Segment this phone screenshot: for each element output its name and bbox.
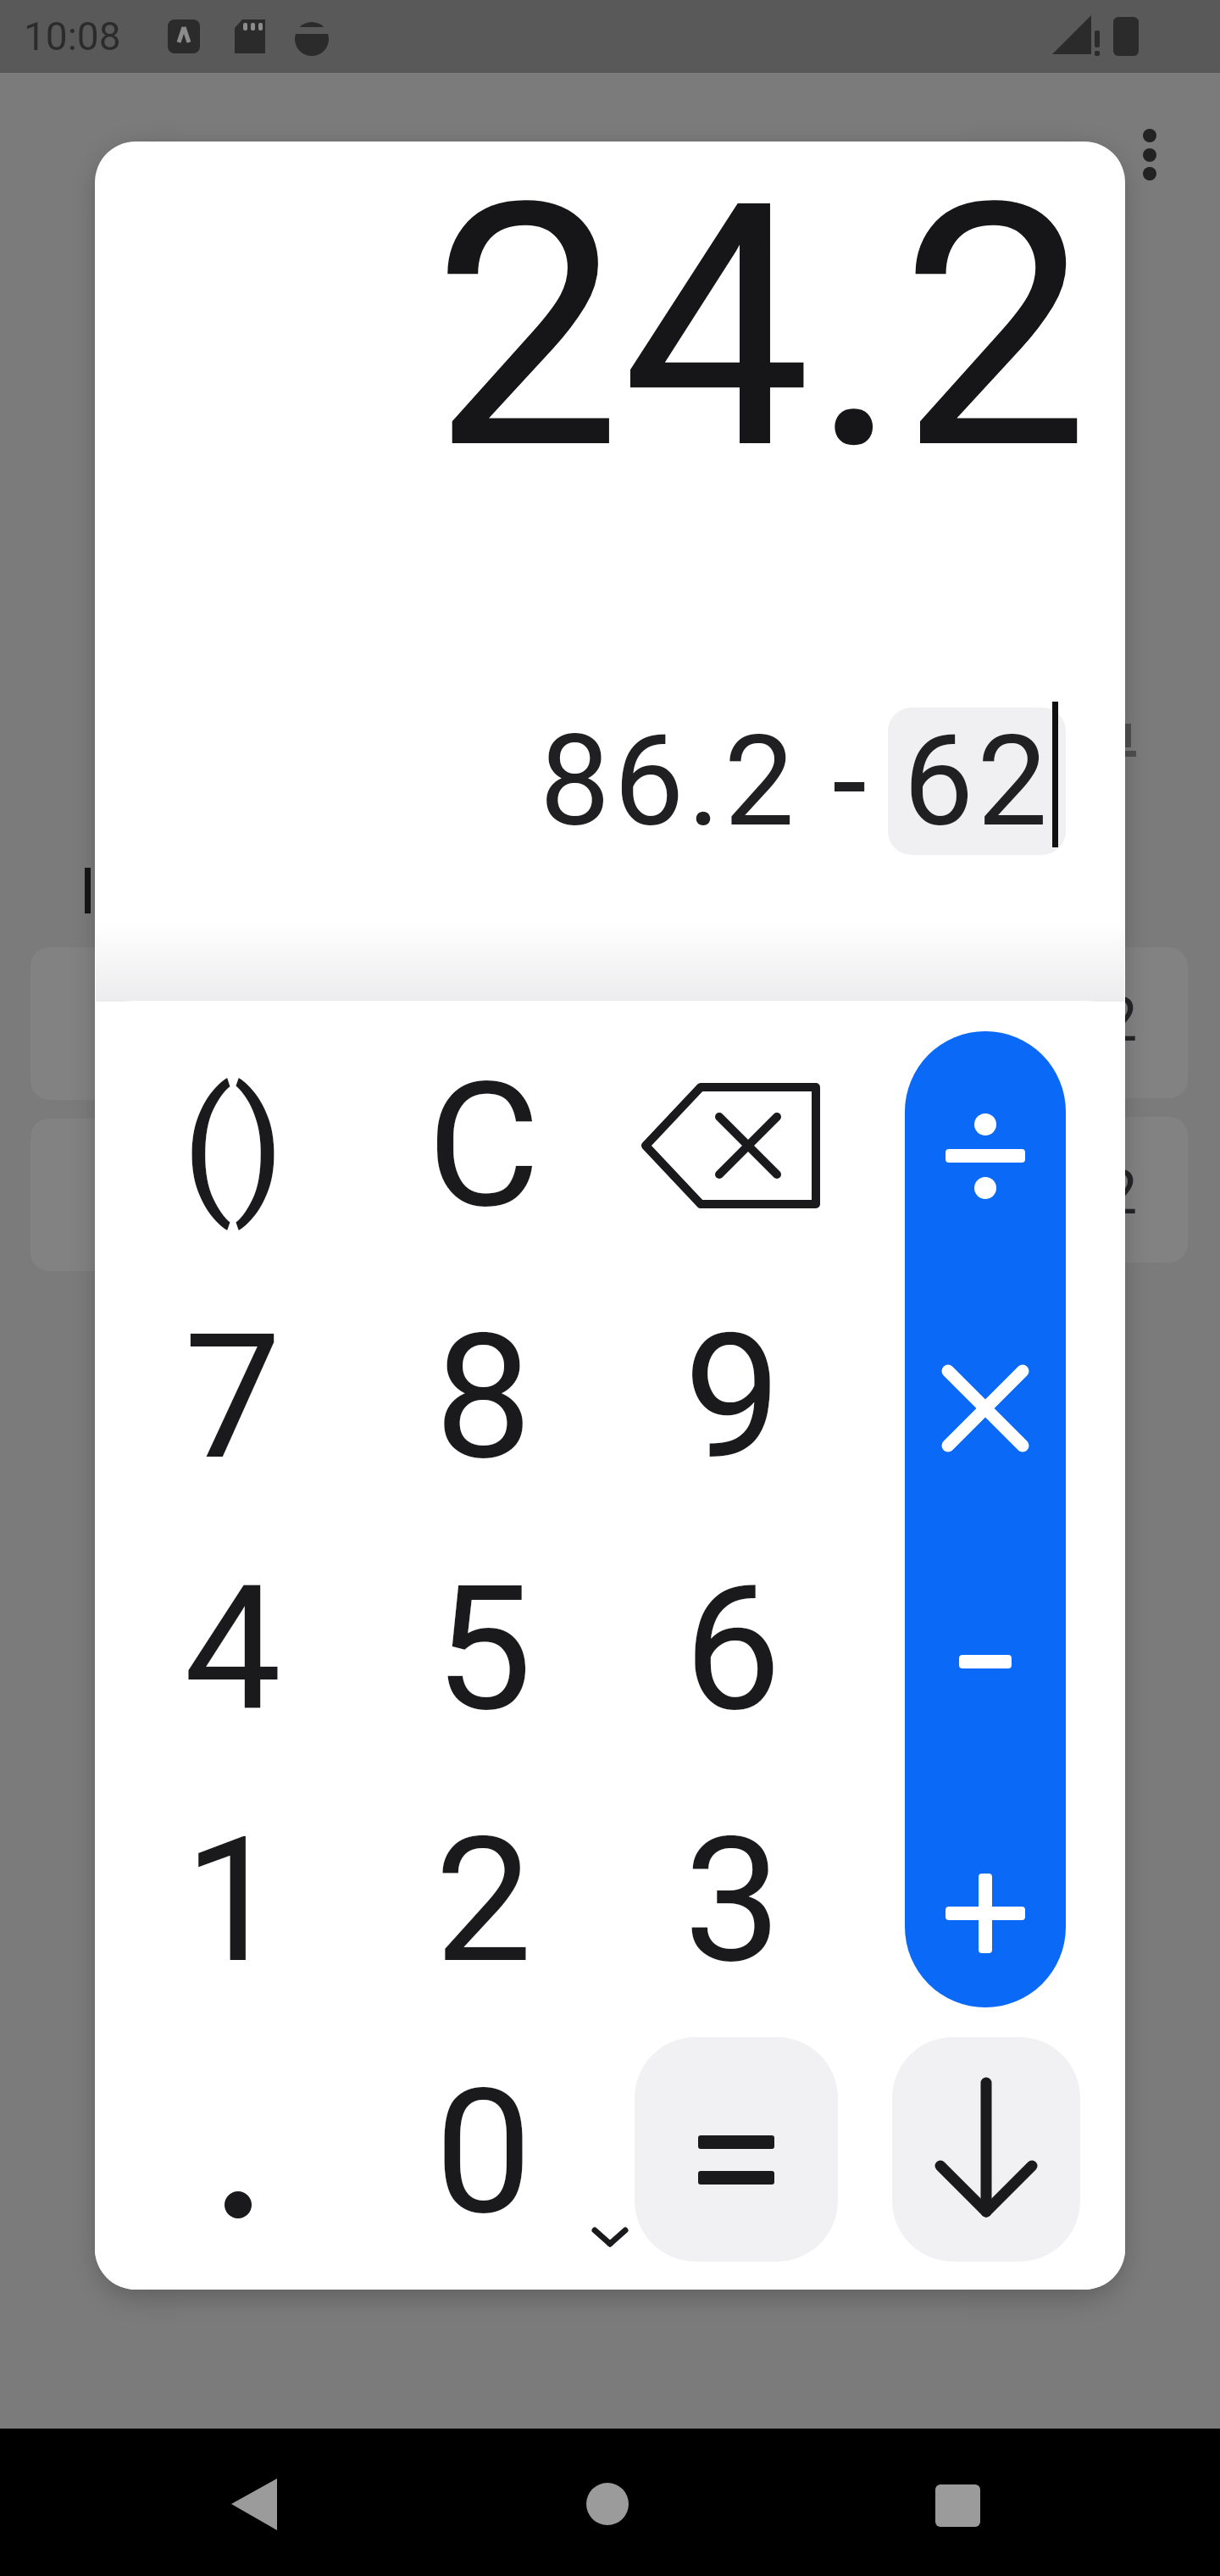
button[interactable]: 4	[131, 1547, 335, 1751]
button[interactable]: 6	[631, 1547, 835, 1751]
button[interactable]: 0	[382, 2051, 585, 2254]
staticText: 24.2	[432, 130, 1090, 503]
button[interactable]: 3	[631, 1799, 835, 2002]
staticText: 6	[684, 1547, 782, 1751]
button[interactable]	[203, 2440, 339, 2568]
staticText: ()	[182, 1059, 285, 1233]
staticText: 5	[435, 1547, 533, 1751]
staticText: 2	[1103, 1157, 1138, 1228]
staticText: 8	[435, 1296, 533, 1499]
button[interactable]: 9	[631, 1296, 835, 1499]
staticText: 0	[435, 2051, 533, 2254]
button[interactable]: C	[382, 1044, 585, 1247]
staticText: 86.2 -	[540, 708, 871, 844]
staticText: 9	[684, 1296, 782, 1499]
button[interactable]	[892, 2037, 1080, 2262]
button[interactable]	[890, 2440, 1025, 2568]
staticText: 62	[903, 708, 1051, 844]
button[interactable]: 8	[382, 1296, 585, 1499]
staticText: C	[427, 1044, 541, 1247]
button[interactable]: 1	[131, 1799, 335, 2002]
button[interactable]: 5	[382, 1547, 585, 1751]
staticText: 10:08	[24, 14, 121, 59]
staticText: 3	[684, 1799, 782, 2002]
button[interactable]	[635, 2037, 838, 2262]
button[interactable]	[905, 1031, 1066, 2007]
staticText: 2	[1103, 984, 1138, 1055]
button[interactable]: 2	[382, 1799, 585, 2002]
staticText: 7	[184, 1296, 282, 1499]
button[interactable]	[631, 1044, 835, 1247]
button[interactable]: ()	[131, 1044, 335, 1247]
staticText: 4	[184, 1547, 282, 1751]
staticText: 2	[435, 1799, 533, 2002]
staticText: 1	[184, 1799, 282, 2002]
button[interactable]: 7	[131, 1296, 335, 1499]
button[interactable]	[131, 2051, 335, 2254]
button[interactable]	[542, 2440, 678, 2568]
